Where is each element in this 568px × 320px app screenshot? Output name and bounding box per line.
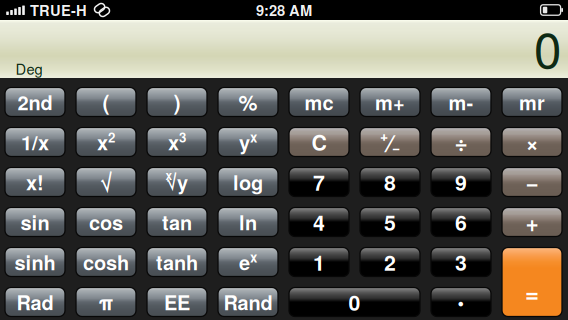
staticText: + (525, 206, 538, 238)
staticText: EE (164, 288, 190, 316)
button[interactable]: tan (147, 207, 207, 236)
button[interactable]: − (502, 167, 562, 196)
staticText: ⁺⁄₋ (380, 126, 400, 158)
staticText: × (525, 126, 538, 158)
staticText: ln (239, 208, 257, 236)
button[interactable]: y (218, 127, 278, 156)
button[interactable]: 9 (431, 167, 491, 196)
staticText: • (457, 289, 464, 315)
button[interactable]: mc (289, 87, 349, 116)
button[interactable]: 0 (289, 287, 420, 316)
staticText: tan (162, 208, 192, 236)
button[interactable]: x! (5, 167, 65, 196)
button[interactable]: mr (502, 87, 562, 116)
staticText: x (250, 127, 257, 147)
staticText: m+ (375, 88, 405, 116)
staticText: m- (448, 88, 473, 116)
button[interactable]: 4 (289, 207, 349, 236)
button[interactable]: cosh (76, 247, 136, 276)
button[interactable]: π (76, 287, 136, 316)
button[interactable]: 1/x (5, 127, 65, 156)
staticText: √y (166, 168, 188, 196)
staticText: 3 (455, 247, 467, 277)
staticText: ) (173, 87, 180, 117)
staticText: x (250, 247, 257, 267)
staticText: cosh (83, 248, 129, 276)
button[interactable]: Rand (218, 287, 278, 316)
button[interactable]: sinh (5, 247, 65, 276)
staticText: 8 (384, 167, 396, 197)
staticText: 0 (534, 12, 561, 82)
staticText: π (98, 288, 113, 316)
staticText: = (525, 275, 539, 309)
button[interactable]: √ (76, 167, 136, 196)
staticText: 7 (313, 167, 325, 197)
button[interactable]: √y (147, 167, 207, 196)
staticText: 2 (384, 247, 396, 277)
staticText: 2 (108, 127, 115, 147)
button[interactable]: C (289, 127, 349, 156)
staticText: 3 (179, 127, 186, 147)
staticText: mc (304, 88, 333, 116)
staticText: ÷ (454, 126, 467, 158)
staticText: 1 (313, 247, 325, 277)
button[interactable]: x (147, 127, 207, 156)
staticText: sin (20, 208, 49, 236)
button[interactable]: Rad (5, 287, 65, 316)
button[interactable]: 8 (360, 167, 420, 196)
button[interactable]: ln (218, 207, 278, 236)
button[interactable]: + (502, 207, 562, 236)
button[interactable]: • (431, 287, 491, 316)
button[interactable]: 5 (360, 207, 420, 236)
staticText: 0 (348, 287, 360, 317)
button[interactable]: ( (76, 87, 136, 116)
button[interactable]: × (502, 127, 562, 156)
staticText: 2nd (17, 88, 52, 116)
staticText: TRUE-H (30, 0, 87, 20)
staticText: C (311, 127, 326, 157)
staticText: log (233, 168, 263, 196)
button[interactable]: m- (431, 87, 491, 116)
staticText: Rad (16, 288, 53, 316)
staticText: Rand (223, 288, 272, 316)
staticText: sinh (14, 248, 55, 276)
staticText: √ (100, 166, 112, 198)
staticText: x (97, 128, 108, 156)
button[interactable]: cos (76, 207, 136, 236)
staticText: y (239, 128, 250, 156)
button[interactable]: ) (147, 87, 207, 116)
staticText: x! (26, 168, 44, 196)
button[interactable]: 1 (289, 247, 349, 276)
button[interactable]: = (502, 247, 562, 316)
staticText: Deg (15, 58, 42, 79)
staticText: 9 (455, 167, 467, 197)
staticText: ( (102, 87, 109, 117)
button[interactable]: tanh (147, 247, 207, 276)
staticText: mr (519, 88, 545, 116)
staticText: tanh (156, 248, 198, 276)
button[interactable]: e (218, 247, 278, 276)
button[interactable]: m+ (360, 87, 420, 116)
button[interactable]: EE (147, 287, 207, 316)
button[interactable]: sin (5, 207, 65, 236)
button[interactable]: ÷ (431, 127, 491, 156)
button[interactable]: ⁺⁄₋ (360, 127, 420, 156)
staticText: 6 (455, 207, 467, 237)
button[interactable]: 2 (360, 247, 420, 276)
button[interactable]: % (218, 87, 278, 116)
button[interactable]: log (218, 167, 278, 196)
staticText: 9:28 AM (256, 0, 312, 20)
button[interactable]: 3 (431, 247, 491, 276)
staticText: 1/x (21, 128, 49, 156)
staticText: x (165, 166, 172, 184)
button[interactable]: 6 (431, 207, 491, 236)
staticText: % (238, 87, 257, 117)
button[interactable]: x (76, 127, 136, 156)
staticText: 5 (384, 207, 396, 237)
staticText: − (525, 166, 538, 198)
button[interactable]: 7 (289, 167, 349, 196)
staticText: 4 (313, 207, 325, 237)
button[interactable]: 2nd (5, 87, 65, 116)
staticText: x (168, 128, 179, 156)
staticText: cos (89, 208, 123, 236)
